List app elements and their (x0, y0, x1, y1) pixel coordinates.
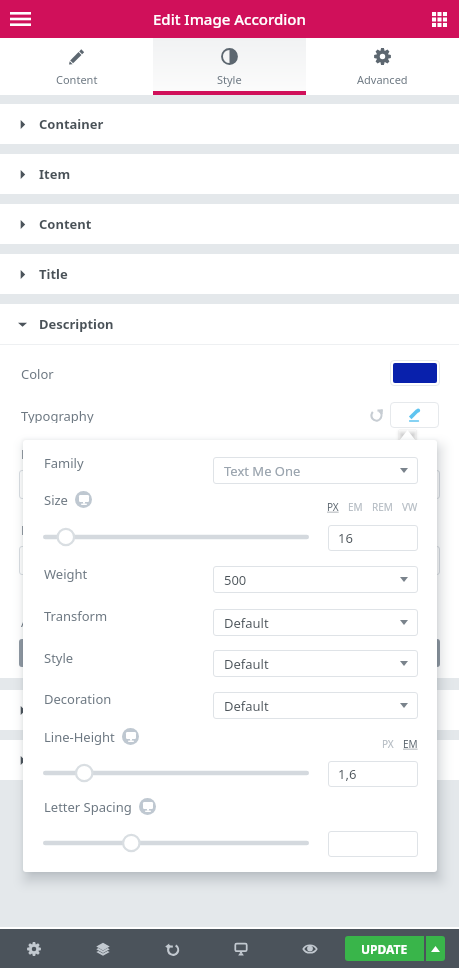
button[interactable]: Device: desktop (75, 491, 92, 508)
button[interactable]: Motion Effects (0, 740, 459, 780)
button[interactable]: Reset typography (367, 405, 386, 424)
staticText: 16 (338, 529, 353, 547)
button[interactable]: Advanced (306, 38, 459, 95)
button[interactable]: Navigator (81, 929, 125, 968)
button[interactable]: Default (213, 609, 418, 636)
button[interactable]: PX (382, 737, 394, 751)
staticText: EM (348, 500, 363, 514)
staticText: Family (44, 454, 84, 471)
staticText: Margin (21, 521, 65, 537)
staticText: Advanced (357, 72, 408, 87)
staticText: PX (327, 500, 339, 514)
button[interactable]: Text Me One (213, 457, 418, 484)
staticText: Alignment (21, 613, 85, 629)
staticText: 500 (224, 571, 247, 589)
button[interactable]: REM (372, 500, 393, 514)
staticText: Default (224, 614, 269, 632)
button[interactable] (328, 831, 418, 857)
staticText: Letter Spacing (44, 798, 132, 815)
button[interactable]: Content (0, 38, 153, 95)
button[interactable]: Menu (0, 0, 40, 38)
button[interactable]: UPDATE (345, 936, 424, 961)
staticText: 1,6 (338, 765, 357, 783)
button[interactable]: 16 (328, 525, 418, 551)
staticText: Content (56, 72, 98, 87)
button[interactable]: Apps (419, 0, 459, 38)
button[interactable]: Item (0, 154, 459, 194)
button[interactable]: Device: desktop (122, 728, 139, 745)
staticText: Size (44, 491, 68, 508)
button[interactable]: Default (213, 692, 418, 719)
staticText: Advanced (39, 701, 103, 719)
button[interactable]: Edit typography (390, 402, 439, 428)
button[interactable]: More save options (426, 936, 445, 961)
staticText: Content (39, 215, 92, 233)
button[interactable]: PX (327, 500, 339, 514)
staticText: Default (224, 655, 269, 673)
staticText: Default (224, 697, 269, 715)
staticText: REM (372, 500, 393, 514)
staticText: UPDATE (361, 941, 408, 957)
staticText: Text Me One (224, 462, 301, 480)
staticText: VW (402, 500, 418, 514)
staticText: PX (382, 737, 394, 751)
button[interactable]: Responsive mode (219, 929, 263, 968)
staticText: Color (21, 365, 54, 381)
staticText: EM (403, 737, 418, 751)
staticText: Decoration (44, 690, 112, 707)
staticText: Motion Effects (39, 751, 133, 769)
button[interactable]: Advanced (0, 690, 459, 730)
button[interactable]: VW (402, 500, 418, 514)
staticText: Style (44, 649, 74, 666)
button[interactable]: Container (0, 104, 459, 144)
staticText: Container (39, 115, 104, 133)
staticText: Description (39, 315, 114, 333)
button[interactable]: Settings (12, 929, 56, 968)
button[interactable]: 1,6 (328, 761, 418, 787)
staticText: Title (39, 265, 68, 283)
button[interactable]: Description (0, 304, 459, 344)
staticText: Line-Height (44, 728, 115, 745)
staticText: Typography (21, 407, 94, 423)
staticText: Style (217, 72, 242, 87)
staticText: Font Size (21, 445, 76, 461)
button[interactable]: Content (0, 204, 459, 244)
button[interactable]: Pick colour (393, 363, 437, 383)
button[interactable]: Device: desktop (139, 798, 156, 815)
button[interactable]: Size slider (43, 527, 309, 547)
button[interactable]: 500 (213, 566, 418, 593)
button[interactable]: Default (213, 650, 418, 677)
button[interactable]: EM (403, 737, 418, 751)
staticText: Edit Image Accordion (153, 9, 306, 29)
button[interactable]: Preview (288, 929, 332, 968)
button[interactable]: Letter spacing slider (43, 833, 309, 853)
staticText: Item (39, 165, 71, 183)
button[interactable]: Title (0, 254, 459, 294)
button[interactable]: EM (348, 500, 363, 514)
button[interactable]: Line height slider (43, 763, 309, 783)
button[interactable]: History (150, 929, 194, 968)
staticText: Weight (44, 565, 88, 582)
staticText: Transform (44, 607, 108, 624)
button[interactable]: Style (153, 38, 306, 95)
